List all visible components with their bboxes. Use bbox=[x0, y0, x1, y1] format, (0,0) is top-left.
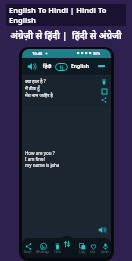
staticText: मेरा नाम जाहिर है bbox=[25, 92, 53, 98]
button[interactable]: Speak output bbox=[97, 225, 107, 235]
staticText: English To Hindi | Hindi To English bbox=[9, 5, 123, 25]
staticText: हिंदी bbox=[43, 63, 52, 70]
button[interactable]: Translate bbox=[59, 236, 75, 252]
staticText: Speak bbox=[101, 250, 109, 254]
button[interactable]: Delete bbox=[100, 78, 108, 86]
staticText: Clear bbox=[54, 250, 61, 254]
staticText: I am fine! bbox=[25, 156, 45, 162]
staticText: मैं ठीक हूँ bbox=[25, 85, 40, 91]
staticText: 10:48 bbox=[32, 51, 43, 56]
button[interactable]: Whatsapp bbox=[35, 242, 51, 254]
staticText: English bbox=[71, 63, 89, 70]
staticText: Like bbox=[90, 250, 96, 254]
staticText: How are you ? bbox=[25, 150, 55, 156]
staticText: Whatsapp bbox=[36, 250, 50, 254]
button[interactable]: Share bbox=[23, 242, 33, 254]
button[interactable]: Speaker bbox=[26, 61, 37, 72]
staticText: 90% bbox=[93, 51, 101, 56]
button[interactable]: Copy bbox=[77, 242, 87, 254]
staticText: Copy bbox=[79, 250, 86, 254]
button[interactable]: Swap languages bbox=[55, 63, 68, 71]
staticText: Share bbox=[24, 250, 32, 254]
staticText: अंग्रेज़ी से हिंदी | हिंदी से अंग्रेजी bbox=[10, 29, 122, 41]
staticText: my name is jaha bbox=[25, 162, 60, 168]
button[interactable]: Speak bbox=[100, 242, 110, 254]
button[interactable]: Clear bbox=[52, 242, 62, 254]
button[interactable]: Menu bbox=[96, 61, 107, 72]
button[interactable]: Like bbox=[88, 242, 98, 254]
button[interactable]: Share bbox=[100, 96, 108, 104]
button[interactable]: Copy bbox=[100, 87, 108, 95]
staticText: क्या हाल है ? bbox=[25, 78, 46, 84]
